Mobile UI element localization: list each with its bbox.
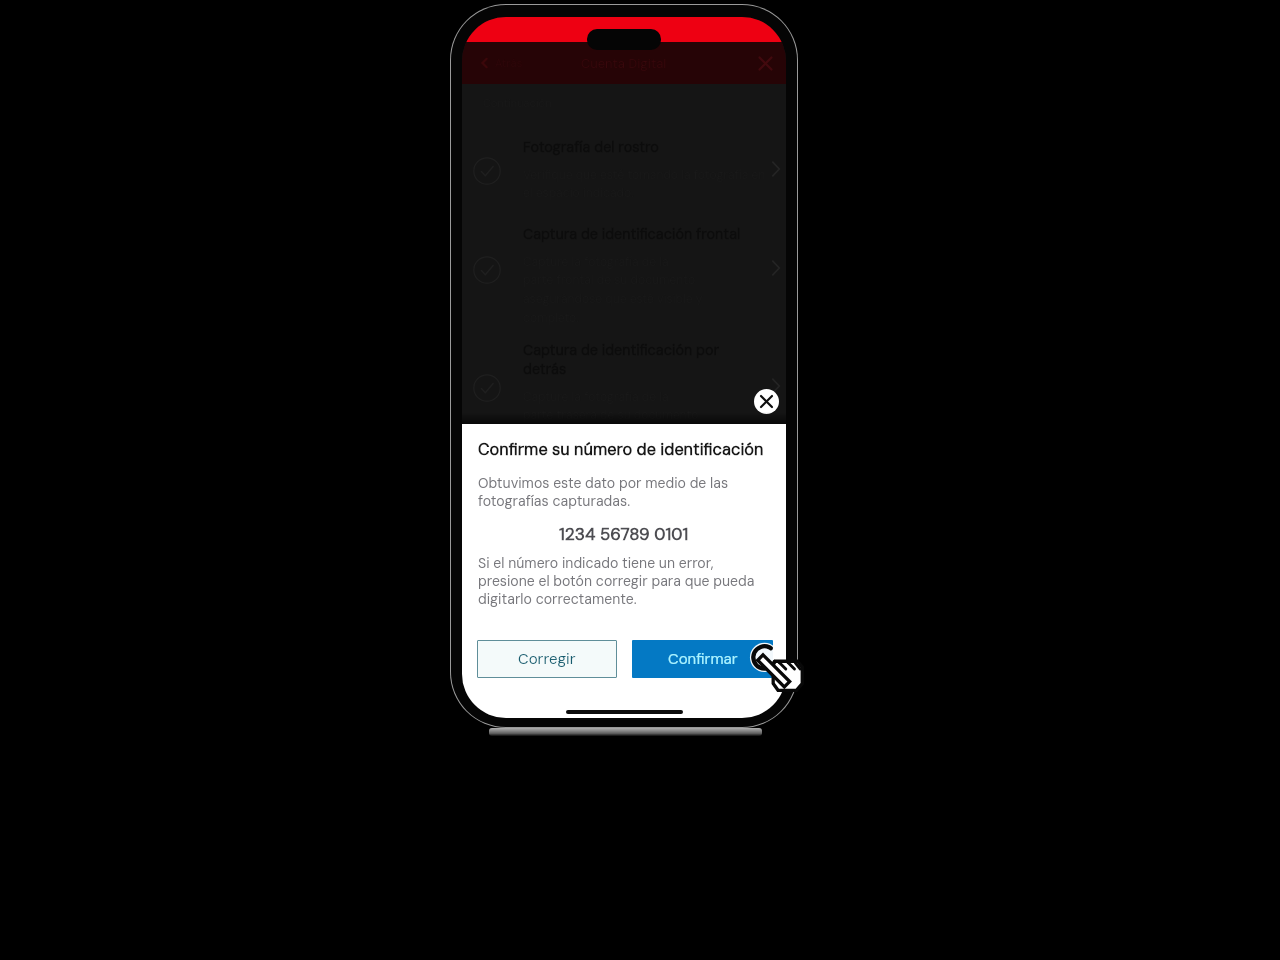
staticText: Si el número indicado tiene un error, pr… <box>478 554 755 608</box>
button[interactable] <box>462 331 786 427</box>
staticText: Corregir <box>518 649 576 669</box>
button[interactable]: Confirmar <box>632 640 773 678</box>
staticText: Confirme su número de identificación <box>478 439 764 460</box>
staticText: Cuenta Digital <box>581 55 667 72</box>
staticText: 1234 56789 0101 <box>559 523 689 545</box>
staticText: Capture la fotografía de la parte traser… <box>523 389 699 423</box>
button[interactable]: Corregir <box>477 640 617 678</box>
staticText: Captura de identificación frontal <box>523 225 741 244</box>
button[interactable]: Cerrar <box>754 389 779 414</box>
staticText: Confirmar <box>668 649 738 669</box>
staticText: Fotografía del rostro <box>523 138 659 157</box>
staticText: Obtuvimos este dato por medio de las fot… <box>478 474 729 510</box>
